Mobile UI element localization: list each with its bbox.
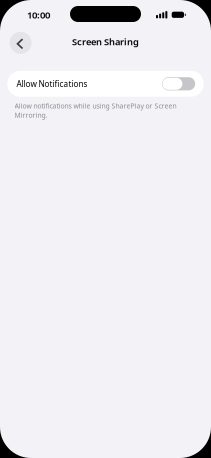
button[interactable]: Allow Notifications: [7, 71, 204, 97]
staticText: Screen Sharing: [72, 35, 139, 48]
staticText: Allow notifications while using SharePla…: [15, 101, 177, 120]
staticText: 10:00: [27, 8, 50, 21]
staticText: Allow Notifications: [16, 78, 87, 89]
button[interactable]: Back: [10, 32, 32, 54]
